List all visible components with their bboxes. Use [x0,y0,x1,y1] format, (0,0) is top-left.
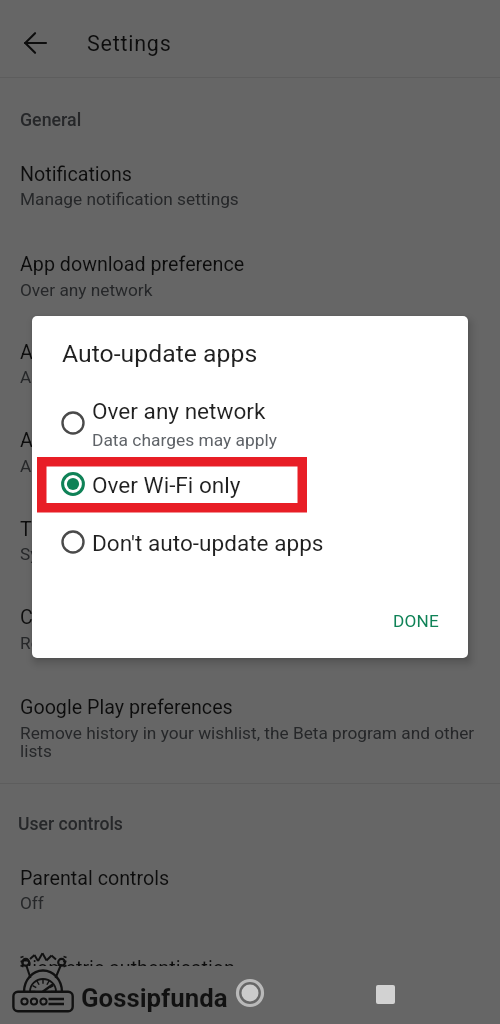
staticText: Over any network [20,280,153,300]
staticText: Google Play preferences [20,696,233,719]
staticText: Over any network [92,398,266,424]
staticText: Clear local search history [20,606,241,629]
staticText: Theme [20,518,81,541]
button[interactable] [0,946,500,966]
staticText: Auto-update apps over Wi-Fi only [20,367,272,387]
staticText: Auto-play videos over Wi-Fi only [20,456,262,476]
staticText: System default [20,544,136,564]
staticText: Notifications [20,163,132,186]
staticText: Gossipfunda [81,983,228,1013]
staticText: Auto-update apps [20,341,175,364]
button[interactable] [32,515,468,569]
button[interactable]: Back [12,20,57,65]
button[interactable] [0,595,500,657]
button[interactable] [382,604,448,638]
button[interactable] [0,151,500,213]
staticText: Settings [87,31,172,56]
button[interactable]: Home [234,977,266,1009]
staticText: Parental controls [20,867,170,890]
staticText: General [20,109,82,130]
button[interactable] [32,457,468,511]
staticText: Data charges may apply [92,430,278,450]
staticText: Over Wi-Fi only [92,472,241,498]
staticText: DONE [393,611,439,631]
staticText: Don't auto-update apps [92,530,324,556]
staticText: App download preference [20,253,245,276]
button[interactable] [0,855,500,917]
staticText: Biometric authentication [20,957,235,966]
staticText: Auto-play videos [20,429,165,452]
staticText: Off [20,893,44,913]
button[interactable] [0,506,500,568]
button[interactable] [80,14,210,70]
staticText: Auto-update apps [62,339,258,368]
staticText: Manage notification settings [20,189,239,209]
staticText: Remove the searches you have done on Goo… [20,633,419,653]
staticText: Remove history in your wishlist, the Bet… [20,723,476,762]
button[interactable] [0,685,500,747]
staticText: User controls [18,814,123,835]
button[interactable] [0,329,500,391]
button[interactable] [0,418,500,480]
button[interactable] [0,242,500,304]
button[interactable]: Recent apps [369,978,401,1010]
button[interactable] [32,396,468,450]
